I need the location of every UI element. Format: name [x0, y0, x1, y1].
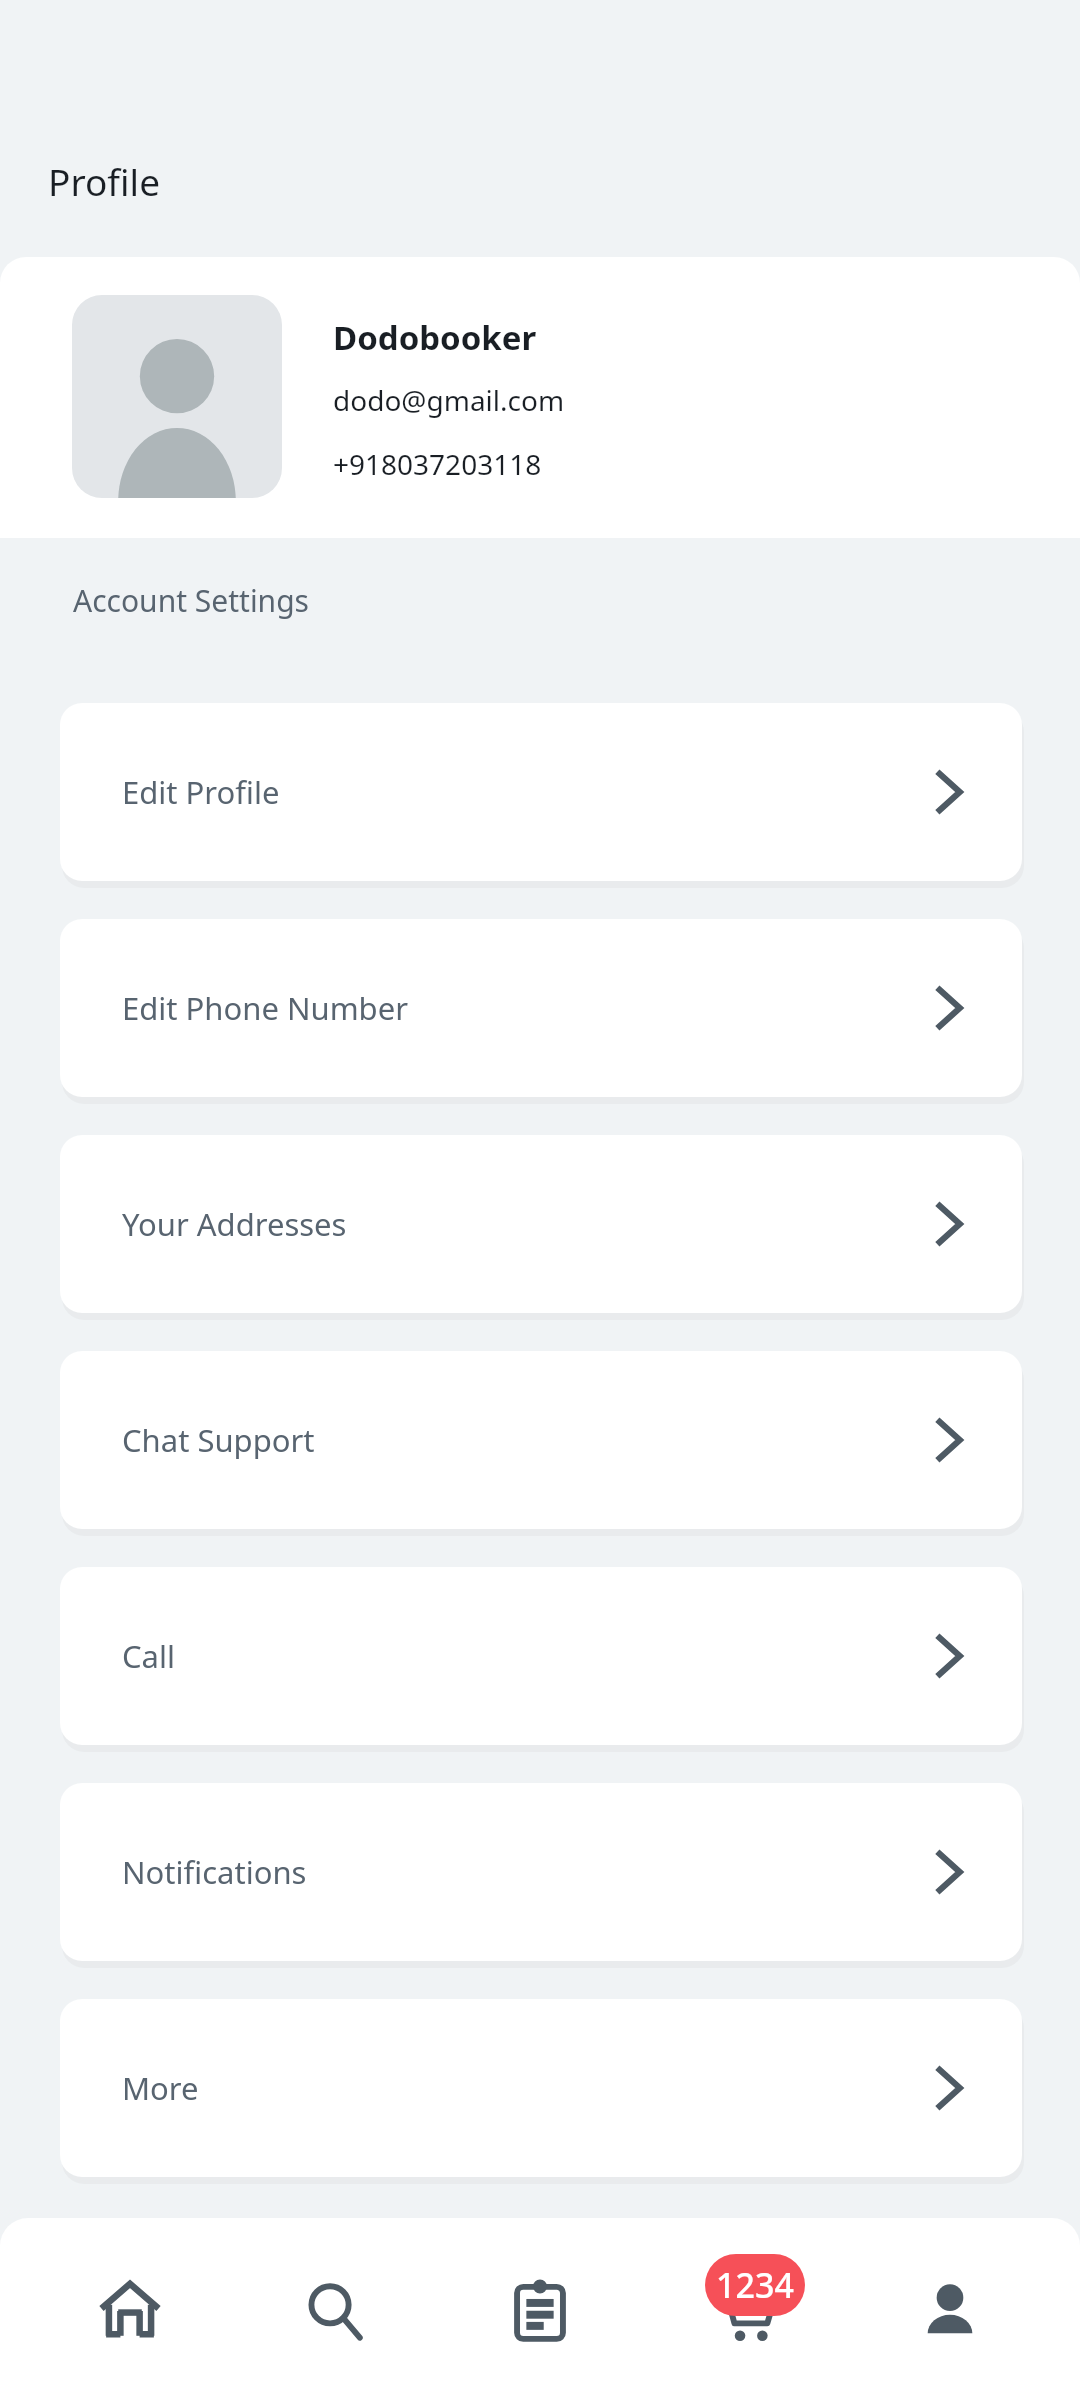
staticText: +918037203118 [333, 445, 542, 483]
staticText: Call [122, 1635, 175, 1677]
button[interactable]: Search [260, 2218, 410, 2400]
button[interactable]: Edit Profile [60, 703, 1022, 881]
staticText: Dodobooker [333, 315, 537, 360]
staticText: Notifications [122, 1851, 307, 1893]
button[interactable]: Edit Phone Number [60, 919, 1022, 1097]
staticText: Edit Phone Number [122, 987, 408, 1029]
button[interactable]: Home [55, 2218, 205, 2400]
staticText: Account Settings [73, 580, 309, 621]
button[interactable]: Cart [670, 2218, 820, 2400]
staticText: Profile [48, 156, 160, 206]
button[interactable]: Dodobooker [0, 257, 1080, 538]
staticText: Your Addresses [122, 1203, 347, 1245]
button[interactable]: Notifications [60, 1783, 1022, 1961]
button[interactable]: Chat Support [60, 1351, 1022, 1529]
staticText: Edit Profile [122, 771, 280, 813]
staticText: 1234 [716, 2262, 794, 2308]
staticText: More [122, 2067, 199, 2109]
button[interactable]: Orders [465, 2218, 615, 2400]
staticText: dodo@gmail.com [333, 381, 565, 419]
button[interactable]: Your Addresses [60, 1135, 1022, 1313]
button[interactable]: Call [60, 1567, 1022, 1745]
button[interactable]: More [60, 1999, 1022, 2177]
staticText: Chat Support [122, 1419, 315, 1461]
button[interactable]: Profile [875, 2218, 1025, 2400]
